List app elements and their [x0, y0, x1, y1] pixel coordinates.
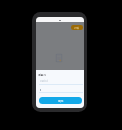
- staticText: 가입: [74, 26, 80, 29]
- staticText: 아이디: [40, 79, 48, 82]
- other: Certificate: [56, 54, 62, 62]
- staticText: 회원가: [38, 73, 46, 76]
- staticText: 확인: [58, 99, 64, 102]
- button[interactable]: 가입: [71, 25, 83, 30]
- button[interactable]: 확인: [39, 97, 82, 104]
